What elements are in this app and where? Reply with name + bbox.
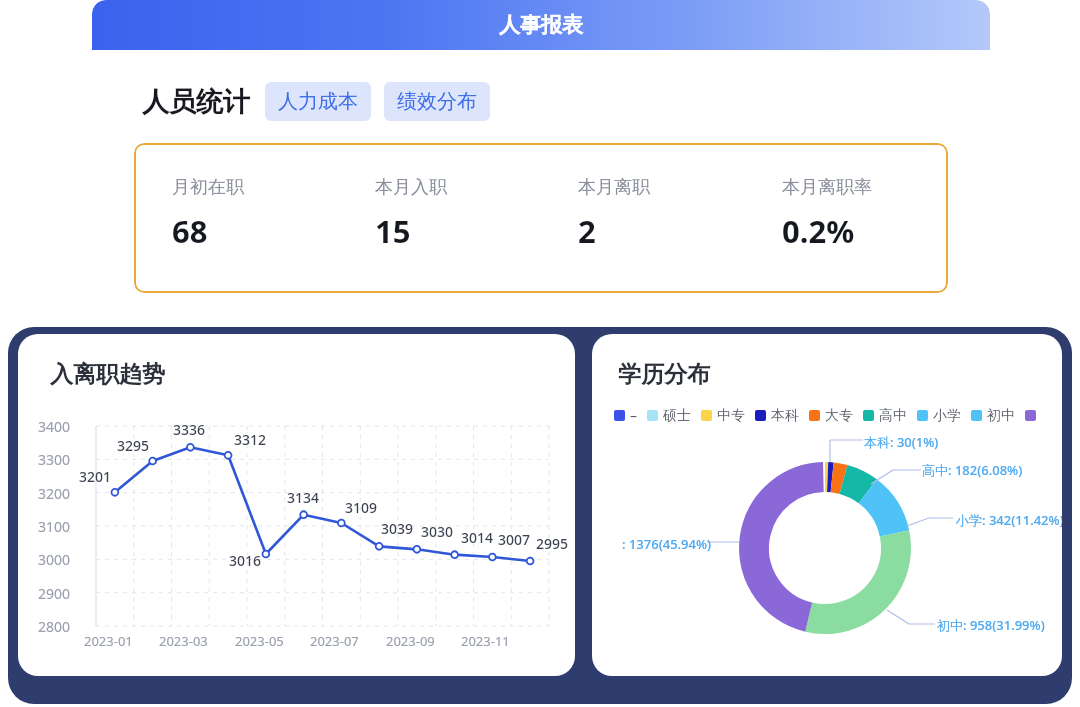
staticText: 2023-03 <box>159 632 208 650</box>
staticText: 3134 <box>287 488 320 507</box>
staticText: : 1376(45.94%) <box>622 535 712 553</box>
staticText: 68 <box>172 210 208 252</box>
staticText: 3100 <box>38 517 71 536</box>
staticText: 3201 <box>79 467 112 486</box>
staticText: 小学 <box>933 407 961 425</box>
staticText: 小学: 342(11.42%) <box>956 511 1062 529</box>
staticText: 3030 <box>421 522 454 541</box>
staticText: 3295 <box>117 436 150 455</box>
staticText: 2 <box>578 210 596 252</box>
other: 入离职趋势折线图 <box>18 406 575 672</box>
staticText: 学历分布 <box>618 360 710 389</box>
staticText: 高中 <box>879 407 907 425</box>
staticText: 硕士 <box>663 407 691 425</box>
staticText: 高中: 182(6.08%) <box>922 461 1023 479</box>
staticText: 2900 <box>38 584 71 603</box>
staticText: 人事报表 <box>499 12 583 38</box>
staticText: 人力成本 <box>278 89 358 114</box>
staticText: 3400 <box>38 417 71 436</box>
staticText: 3014 <box>461 528 494 547</box>
staticText: 2023-11 <box>461 632 510 650</box>
staticText: 本月离职率 <box>782 176 872 199</box>
staticText: 大专 <box>825 407 853 425</box>
button[interactable]: 绩效分布 <box>384 82 490 121</box>
staticText: 3336 <box>173 420 206 439</box>
staticText: – <box>630 406 637 425</box>
staticText: 2023-01 <box>84 632 133 650</box>
staticText: 初中: 958(31.99%) <box>937 616 1045 634</box>
staticText: 初中 <box>987 407 1015 425</box>
staticText: 3000 <box>38 550 71 569</box>
staticText: 3312 <box>234 430 267 449</box>
staticText: 3007 <box>498 530 531 549</box>
staticText: 2800 <box>38 617 71 636</box>
staticText: 2995 <box>536 534 569 553</box>
button[interactable]: 人力成本 <box>265 82 371 121</box>
button[interactable]: 入离职趋势 <box>18 334 575 676</box>
staticText: 本月入职 <box>375 176 447 199</box>
staticText: 3039 <box>381 519 414 538</box>
staticText: 0.2% <box>782 210 855 252</box>
staticText: 绩效分布 <box>397 89 477 114</box>
staticText: 3200 <box>38 484 71 503</box>
other: 学历分布环形图 <box>592 430 1062 670</box>
staticText: 3016 <box>229 551 262 570</box>
staticText: 3109 <box>345 498 378 517</box>
button[interactable]: 月初在职 <box>134 143 948 293</box>
staticText: 2023-07 <box>310 632 359 650</box>
staticText: 中专 <box>717 407 745 425</box>
button[interactable]: 学历分布 <box>592 334 1062 676</box>
staticText: 2023-09 <box>386 632 435 650</box>
staticText: 月初在职 <box>172 176 244 199</box>
staticText: 本科 <box>771 407 799 425</box>
staticText: 3300 <box>38 450 71 469</box>
staticText: 15 <box>375 210 411 252</box>
staticText: 本月离职 <box>578 176 650 199</box>
staticText: 入离职趋势 <box>50 360 165 389</box>
staticText: 人员统计 <box>142 85 250 119</box>
staticText: 2023-05 <box>235 632 284 650</box>
staticText: 本科: 30(1%) <box>864 433 939 451</box>
